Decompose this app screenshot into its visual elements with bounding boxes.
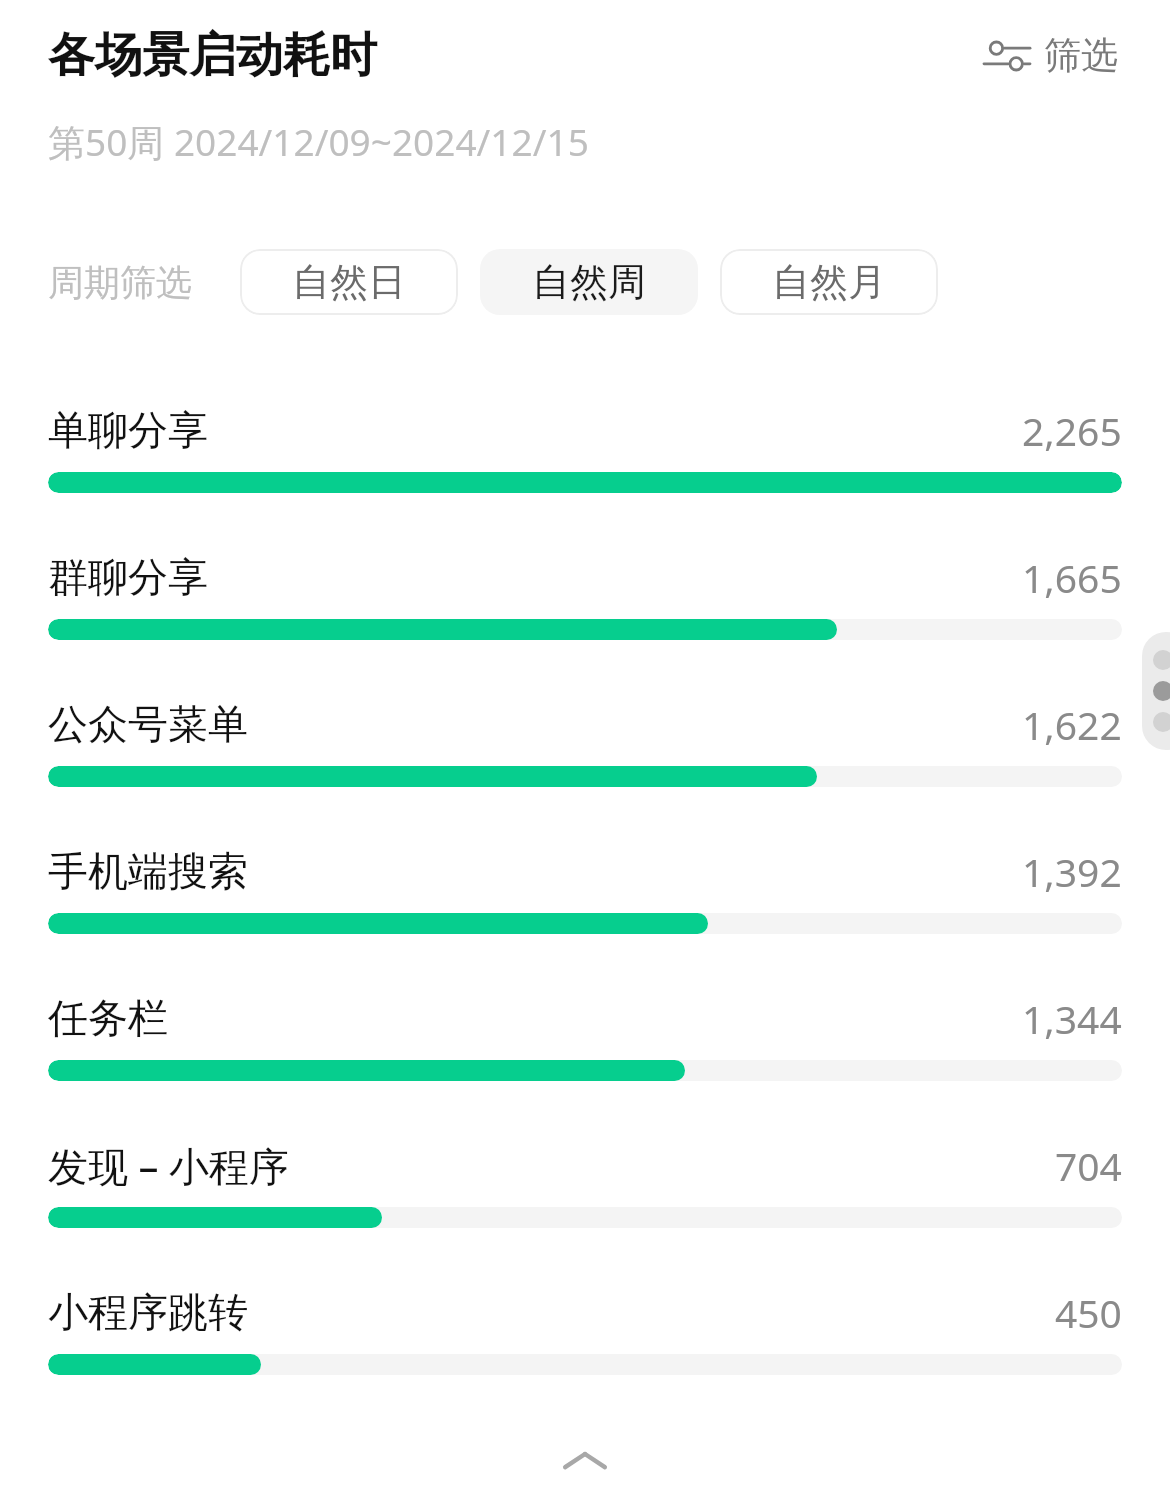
button[interactable]: 单聊分享 — [0, 388, 1170, 472]
staticText: 各场景启动耗时 — [48, 26, 377, 85]
button[interactable]: 自然周 — [480, 249, 698, 315]
staticText: 1,344 — [1022, 992, 1122, 1045]
staticText: 1,665 — [1022, 551, 1122, 604]
staticText: 自然月 — [772, 258, 886, 306]
button[interactable]: 页面指示器 — [1142, 632, 1170, 750]
staticText: 筛选 — [1044, 32, 1118, 79]
staticText: 周期筛选 — [48, 260, 192, 305]
staticText: 自然周 — [532, 258, 646, 306]
button[interactable]: 收起 — [539, 1417, 631, 1502]
staticText: 自然日 — [292, 258, 406, 306]
staticText: 公众号菜单 — [48, 699, 248, 749]
staticText: 704 — [1055, 1139, 1122, 1192]
button[interactable]: 发现 – 小程序 — [0, 1123, 1170, 1207]
staticText: 450 — [1055, 1286, 1122, 1339]
staticText: 任务栏 — [48, 993, 168, 1043]
staticText: 发现 – 小程序 — [48, 1138, 289, 1193]
staticText: 群聊分享 — [48, 552, 208, 602]
button[interactable]: 公众号菜单 — [0, 682, 1170, 766]
staticText: 1,392 — [1022, 845, 1122, 898]
button[interactable]: 小程序跳转 — [0, 1270, 1170, 1354]
button[interactable]: 筛选 — [980, 26, 1122, 85]
button[interactable]: 手机端搜索 — [0, 829, 1170, 913]
staticText: 2,265 — [1022, 404, 1122, 457]
button[interactable]: 群聊分享 — [0, 535, 1170, 619]
button[interactable]: 自然日 — [240, 249, 458, 315]
staticText: 1,622 — [1022, 698, 1122, 751]
staticText: 第50周 2024/12/09~2024/12/15 — [48, 116, 589, 167]
button[interactable]: 自然月 — [720, 249, 938, 315]
button[interactable]: 任务栏 — [0, 976, 1170, 1060]
staticText: 小程序跳转 — [48, 1287, 248, 1337]
staticText: 手机端搜索 — [48, 846, 248, 896]
staticText: 单聊分享 — [48, 405, 208, 455]
